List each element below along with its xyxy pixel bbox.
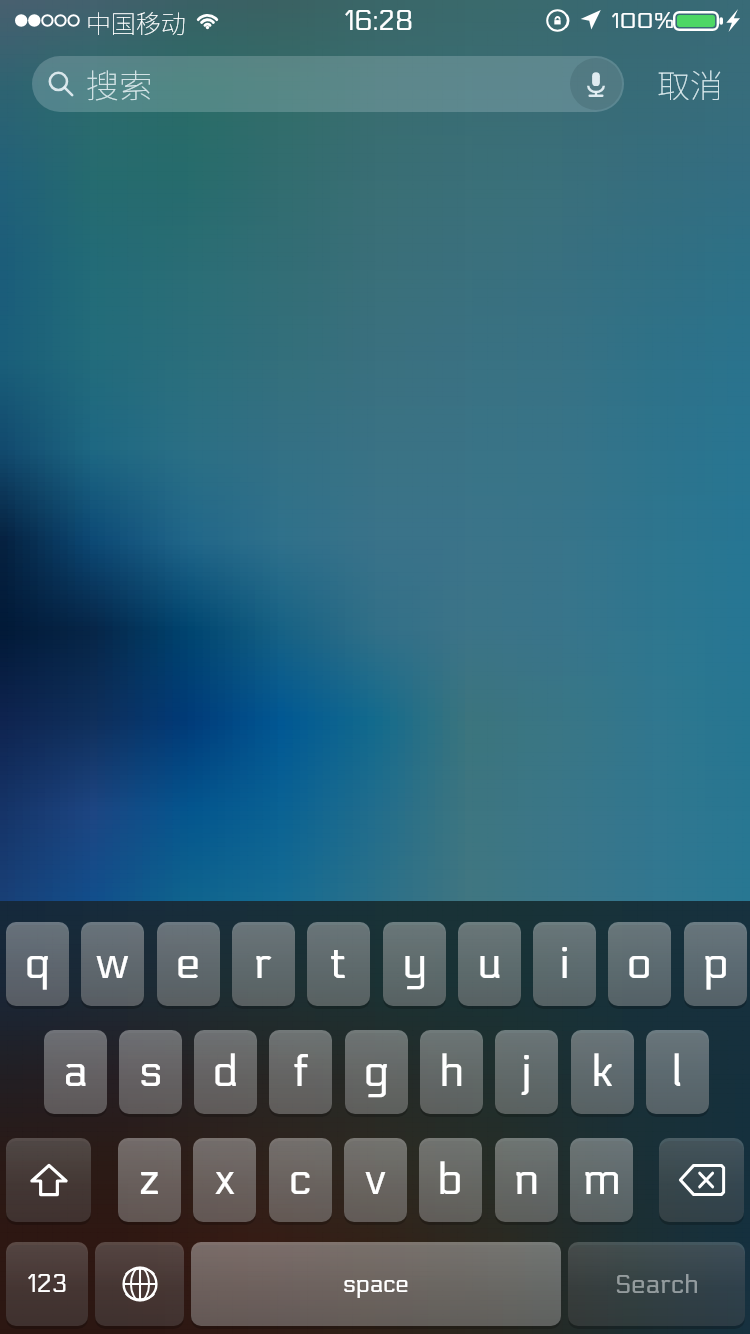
button[interactable]: l	[646, 1030, 709, 1114]
button[interactable]: 搜索	[32, 56, 624, 112]
staticText: l	[672, 1046, 683, 1098]
staticText: z	[139, 1154, 160, 1206]
button[interactable]: c	[269, 1138, 332, 1222]
staticText: 100%	[611, 8, 675, 34]
staticText: 中国移动	[86, 4, 187, 38]
button[interactable]: z	[118, 1138, 181, 1222]
button[interactable]: f	[269, 1030, 332, 1114]
button[interactable]: Shift	[6, 1138, 91, 1222]
staticText: s	[139, 1046, 163, 1098]
staticText: q	[25, 938, 51, 990]
staticText: b	[438, 1154, 463, 1206]
staticText: w	[96, 938, 129, 990]
staticText: o	[627, 938, 652, 990]
staticText: m	[583, 1154, 621, 1206]
button[interactable]: Voice search	[570, 58, 622, 110]
button[interactable]: s	[119, 1030, 182, 1114]
button[interactable]: i	[533, 922, 596, 1006]
button[interactable]: n	[495, 1138, 558, 1222]
button[interactable]: w	[81, 922, 144, 1006]
staticText: v	[365, 1154, 386, 1206]
staticText: r	[254, 938, 273, 990]
button[interactable]: u	[458, 922, 521, 1006]
button[interactable]: o	[608, 922, 671, 1006]
button[interactable]: 取消	[645, 56, 735, 112]
staticText: space	[343, 1270, 409, 1298]
staticText: j	[522, 1046, 532, 1098]
staticText: h	[440, 1046, 464, 1098]
button[interactable]: a	[44, 1030, 107, 1114]
button[interactable]: Backspace	[659, 1138, 744, 1222]
button[interactable]: k	[571, 1030, 634, 1114]
button[interactable]: x	[193, 1138, 256, 1222]
button[interactable]: d	[194, 1030, 257, 1114]
staticText: a	[63, 1046, 88, 1098]
button[interactable]: q	[6, 922, 69, 1006]
button[interactable]: e	[157, 922, 220, 1006]
button[interactable]: 123	[6, 1242, 88, 1326]
staticText: c	[289, 1154, 312, 1206]
button[interactable]: p	[684, 922, 747, 1006]
staticText: e	[176, 938, 201, 990]
button[interactable]: r	[232, 922, 295, 1006]
button[interactable]: m	[570, 1138, 633, 1222]
button[interactable]: g	[345, 1030, 408, 1114]
button[interactable]: y	[383, 922, 446, 1006]
staticText: 16:28	[344, 5, 414, 37]
button[interactable]: v	[344, 1138, 407, 1222]
staticText: 搜索	[86, 60, 152, 108]
staticText: 取消	[657, 60, 723, 108]
staticText: 123	[27, 1269, 68, 1299]
staticText: k	[592, 1046, 614, 1098]
staticText: Search	[615, 1269, 699, 1300]
staticText: x	[214, 1154, 236, 1206]
button[interactable]: Search	[568, 1242, 745, 1326]
staticText: y	[403, 938, 427, 990]
staticText: t	[330, 938, 347, 990]
button[interactable]: h	[420, 1030, 483, 1114]
button[interactable]: b	[419, 1138, 482, 1222]
staticText: f	[293, 1046, 309, 1098]
staticText: i	[560, 938, 570, 990]
staticText: n	[514, 1154, 539, 1206]
staticText: d	[213, 1046, 239, 1098]
button[interactable]: t	[307, 922, 370, 1006]
button[interactable]: j	[495, 1030, 558, 1114]
staticText: p	[703, 938, 729, 990]
staticText: g	[364, 1046, 390, 1098]
staticText: u	[478, 938, 502, 990]
button[interactable]: Change keyboard	[95, 1242, 184, 1326]
button[interactable]: space	[191, 1242, 561, 1326]
